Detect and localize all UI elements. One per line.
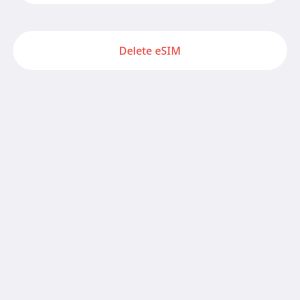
staticText: Delete eSIM [119, 43, 181, 58]
button[interactable]: Delete eSIM [13, 31, 287, 70]
